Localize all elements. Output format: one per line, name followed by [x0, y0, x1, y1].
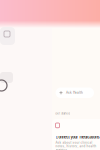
button[interactable]: Connect your medications: [52, 119, 100, 150]
staticText: Ask about your clinical notes, history, …: [55, 141, 96, 150]
staticText: Ask Health: [66, 91, 83, 95]
button[interactable]: Ask Health: [56, 87, 94, 98]
staticText: Connect your medications: [55, 135, 99, 139]
staticText: Get started: [55, 112, 70, 115]
